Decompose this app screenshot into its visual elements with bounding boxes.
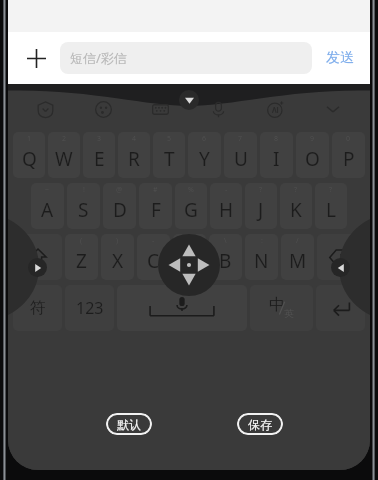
button[interactable]: Voice input — [205, 96, 231, 122]
staticText: S — [78, 197, 89, 223]
button[interactable]: ~ — [31, 183, 64, 229]
button[interactable]: Numbers — [65, 285, 114, 331]
staticText: 符 — [30, 298, 46, 318]
staticText: F — [151, 197, 161, 223]
button[interactable]: ) — [101, 234, 134, 280]
button[interactable]: Keyboard layout — [147, 96, 173, 122]
button[interactable]: Space — [117, 285, 247, 331]
button[interactable]: / — [281, 234, 314, 280]
staticText: C — [147, 248, 160, 274]
staticText: B — [219, 248, 232, 274]
button[interactable]: 1 — [13, 132, 45, 178]
button[interactable]: 4 — [118, 132, 150, 178]
button[interactable]: Move left — [331, 258, 350, 277]
button[interactable]: % — [175, 183, 207, 229]
staticText: H — [219, 197, 234, 223]
button[interactable]: 保存 — [237, 413, 283, 435]
button[interactable]: Symbols — [13, 285, 62, 331]
button[interactable]: _ — [173, 234, 206, 280]
staticText: W — [55, 146, 73, 172]
staticText: Y — [199, 146, 210, 172]
button[interactable]: 9 — [296, 132, 329, 178]
button[interactable]: ? — [245, 183, 277, 229]
staticText: A — [41, 197, 54, 223]
staticText: 短信/彩信 — [70, 49, 127, 67]
button[interactable]: AI assistant — [262, 96, 288, 122]
staticText: 2 — [62, 134, 67, 144]
button[interactable]: # — [139, 183, 172, 229]
button[interactable]: ( — [65, 234, 98, 280]
button[interactable]: Move right — [28, 258, 47, 277]
staticText: # — [153, 185, 158, 195]
button[interactable]: 短信/彩信 — [60, 42, 312, 74]
button[interactable]: Privacy shield — [32, 96, 58, 122]
staticText: N — [254, 248, 269, 274]
staticText: L — [326, 197, 336, 223]
staticText: G — [184, 197, 198, 223]
staticText: D — [113, 197, 127, 223]
staticText: _ — [188, 236, 192, 246]
button[interactable]: Shift — [13, 234, 62, 280]
button[interactable]: 6 — [188, 132, 221, 178]
staticText: 4 — [132, 134, 137, 144]
staticText: M — [289, 248, 307, 274]
staticText: 8 — [274, 134, 279, 144]
staticText: 6 — [202, 134, 207, 144]
staticText: 3 — [97, 134, 102, 144]
button[interactable]: - — [210, 183, 242, 229]
button[interactable]: ? — [280, 183, 312, 229]
button[interactable]: ? — [315, 183, 347, 229]
button[interactable]: Emoji — [90, 96, 116, 122]
button[interactable]: 0 — [332, 132, 365, 178]
staticText: 9 — [310, 134, 315, 144]
button[interactable]: Chinese English toggle — [250, 285, 313, 331]
staticText: J — [258, 197, 264, 223]
button[interactable]: Enter — [316, 285, 365, 331]
staticText: T — [164, 146, 175, 172]
button[interactable]: Cursor direction pad — [158, 234, 220, 296]
button[interactable]: - — [137, 234, 170, 280]
staticText: 123 — [76, 297, 104, 319]
button[interactable]: 3 — [83, 132, 115, 178]
button[interactable]: Backspace — [317, 234, 365, 280]
staticText: Q — [22, 146, 37, 172]
button[interactable]: \ — [209, 234, 242, 280]
button[interactable]: 发送 — [320, 43, 360, 73]
button[interactable]: Add attachment — [18, 40, 54, 76]
staticText: P — [343, 146, 355, 172]
button[interactable]: @ — [103, 183, 136, 229]
button[interactable]: : — [245, 234, 278, 280]
button[interactable]: 默认 — [106, 413, 152, 435]
staticText: Z — [76, 248, 87, 274]
staticText: X — [112, 248, 124, 274]
staticText: V — [184, 248, 196, 274]
staticText: 发送 — [326, 49, 354, 67]
button[interactable]: ! — [67, 183, 100, 229]
staticText: O — [305, 146, 320, 172]
button[interactable]: 8 — [260, 132, 293, 178]
staticText: 默认 — [117, 417, 141, 432]
staticText: 保存 — [248, 417, 272, 432]
button[interactable]: 2 — [48, 132, 80, 178]
button[interactable]: 7 — [224, 132, 257, 178]
staticText: E — [94, 146, 105, 172]
button[interactable]: 5 — [153, 132, 185, 178]
button[interactable]: Collapse keyboard — [179, 90, 199, 110]
